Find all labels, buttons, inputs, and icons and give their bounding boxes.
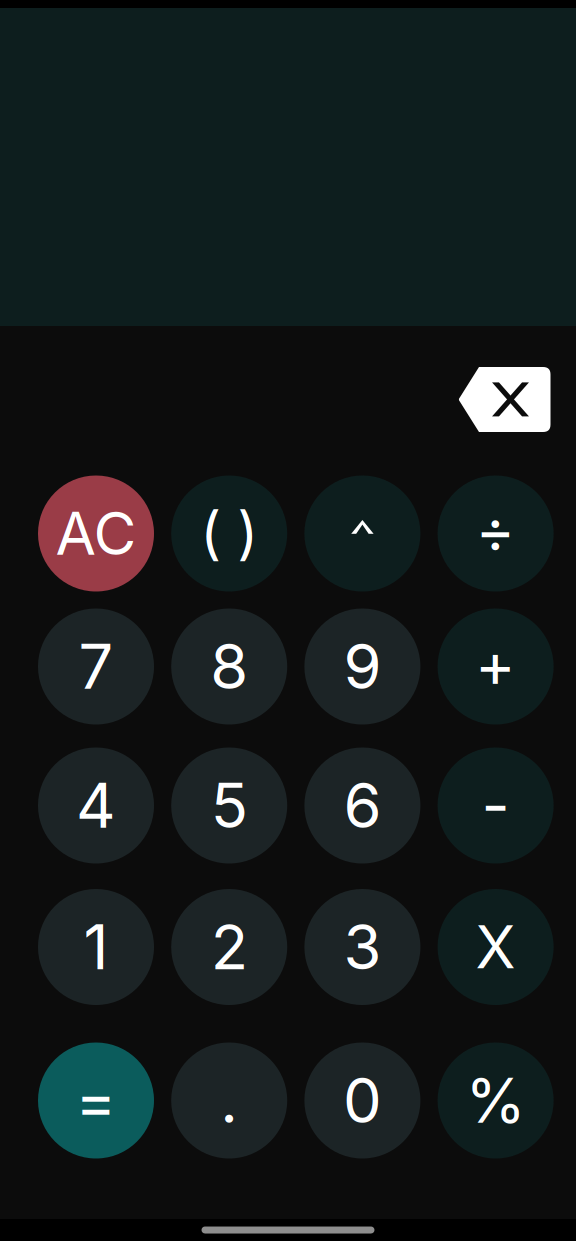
staticText: AC xyxy=(55,498,136,569)
button[interactable]: 3 xyxy=(304,889,420,1005)
button[interactable]: % xyxy=(438,1042,554,1158)
staticText: + xyxy=(475,627,516,702)
button[interactable]: 2 xyxy=(171,889,287,1005)
staticText: 1 xyxy=(83,910,108,984)
button[interactable]: 9 xyxy=(304,608,420,724)
button[interactable]: Delete xyxy=(458,367,550,432)
staticText: 5 xyxy=(211,768,248,843)
staticText: ÷ xyxy=(476,494,516,567)
staticText: 7 xyxy=(78,629,113,704)
staticText: 3 xyxy=(343,910,381,984)
staticText: % xyxy=(466,1063,526,1138)
staticText: = xyxy=(75,1063,116,1138)
staticText: 8 xyxy=(210,629,248,704)
button[interactable]: + xyxy=(438,608,554,724)
button[interactable]: Power xyxy=(304,475,420,591)
button[interactable]: 1 xyxy=(38,889,154,1005)
button[interactable]: ÷ xyxy=(438,475,554,591)
staticText: 9 xyxy=(343,629,381,704)
button[interactable]: 5 xyxy=(171,747,287,863)
button[interactable]: X xyxy=(438,889,554,1005)
button[interactable]: 6 xyxy=(304,747,420,863)
button[interactable]: 8 xyxy=(171,608,287,724)
button[interactable]: 7 xyxy=(38,608,154,724)
button[interactable]: 4 xyxy=(38,747,154,863)
staticText: 4 xyxy=(76,768,116,843)
staticText: ( ) xyxy=(200,498,258,567)
button[interactable]: ( ) xyxy=(171,475,287,591)
staticText: . xyxy=(220,1063,238,1138)
staticText: 6 xyxy=(343,768,381,843)
staticText: - xyxy=(482,768,510,843)
button[interactable]: AC xyxy=(38,475,154,591)
button[interactable]: - xyxy=(438,747,554,863)
button[interactable]: 0 xyxy=(304,1042,420,1158)
staticText: 2 xyxy=(211,910,248,984)
button[interactable]: . xyxy=(171,1042,287,1158)
staticText: X xyxy=(476,911,516,982)
button[interactable]: = xyxy=(38,1042,154,1158)
staticText: 0 xyxy=(343,1063,382,1138)
